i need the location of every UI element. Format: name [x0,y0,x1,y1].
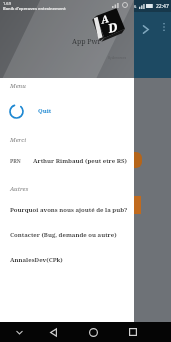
button[interactable]: Pourquoi avons nous ajouté de la pub? [10,204,134,216]
button[interactable]: Home [84,323,102,341]
staticText: PRN [10,158,21,165]
staticText: Contacter (Bug, demande ou autre) [10,231,117,239]
staticText: A [99,11,110,27]
staticText: App Pwr [72,37,101,47]
staticText: AnnalesDev(CPk) [10,256,63,264]
staticText: Banik d'epreuves entrainement [3,6,66,11]
staticText: Quit [38,107,52,115]
button[interactable]: Back [44,323,62,341]
staticText: Menu [10,82,26,90]
button[interactable]: PRN [10,154,134,168]
button[interactable]: Quit [10,100,134,122]
staticText: D [106,18,120,36]
staticText: Arthur Rimbaud (peut etre RS) [33,157,127,165]
staticText: By Annonces [108,56,127,60]
button[interactable]: Hide keyboard [10,323,28,341]
button[interactable]: Recent apps [124,323,142,341]
button[interactable]: More options [157,20,171,34]
staticText: 100 % [125,4,137,9]
staticText: 1.69 [3,1,11,6]
button[interactable]: Next [136,20,154,38]
button[interactable]: AnnalesDev(CPk) [10,254,134,266]
staticText: Pourquoi avons nous ajouté de la pub? [10,206,128,214]
staticText: Merci [10,136,27,144]
staticText: Autres [10,185,29,193]
button[interactable]: Contacter (Bug, demande ou autre) [10,229,134,241]
staticText: 22:47 [156,3,169,10]
